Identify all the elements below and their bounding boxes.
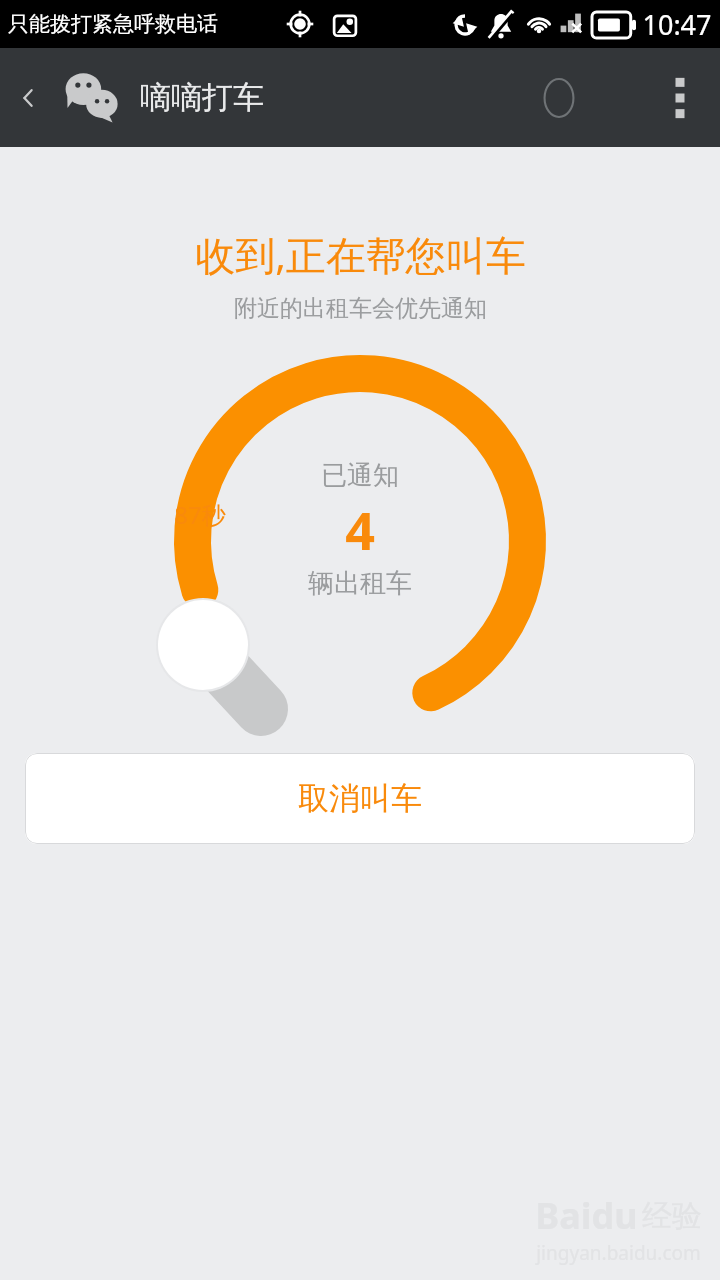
staticText: 经验	[642, 1197, 702, 1235]
staticText: 附近的出租车会优先通知	[234, 294, 487, 323]
staticText: 10:47	[642, 6, 712, 43]
button[interactable]: Loading	[524, 63, 594, 133]
button[interactable]: More options	[640, 48, 720, 147]
staticText: 4	[345, 494, 375, 565]
staticText: 辆出租车	[308, 567, 412, 600]
staticText: 87秒	[174, 498, 226, 531]
button[interactable]: 取消叫车	[25, 753, 695, 844]
button[interactable]: Back	[0, 48, 56, 147]
staticText: jingyan.baidu.com	[536, 1240, 701, 1266]
staticText: 取消叫车	[298, 779, 422, 818]
staticText: 只能拨打紧急呼救电话	[8, 11, 218, 37]
staticText: Baidu	[535, 1191, 638, 1240]
staticText: 嘀嘀打车	[140, 78, 264, 117]
staticText: 收到,正在帮您叫车	[195, 227, 526, 282]
staticText: 已通知	[321, 459, 399, 492]
